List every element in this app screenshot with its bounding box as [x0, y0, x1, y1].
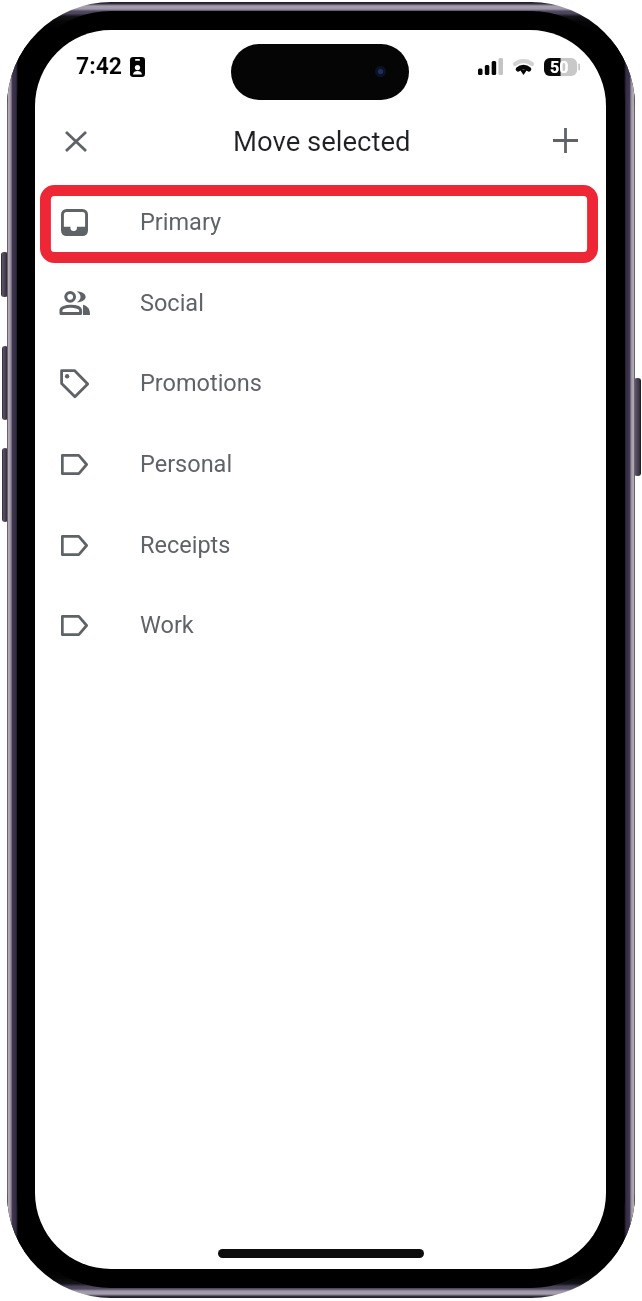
button[interactable]: Social: [35, 263, 606, 343]
staticText: Move selected: [233, 125, 411, 157]
staticText: Social: [140, 289, 204, 317]
button[interactable]: Promotions: [35, 343, 606, 423]
staticText: 7:42: [76, 53, 123, 80]
staticText: Promotions: [140, 369, 262, 397]
button[interactable]: Work: [35, 585, 606, 665]
button[interactable]: Receipts: [35, 505, 606, 585]
staticText: 50: [550, 58, 569, 77]
button[interactable]: Personal: [35, 424, 606, 504]
staticText: Work: [140, 611, 194, 639]
button[interactable]: Close: [52, 117, 100, 165]
staticText: Personal: [140, 450, 233, 478]
button[interactable]: Create new label: [541, 116, 589, 164]
staticText: Primary: [140, 208, 222, 236]
button[interactable]: Primary: [35, 182, 606, 262]
staticText: Receipts: [140, 531, 231, 559]
